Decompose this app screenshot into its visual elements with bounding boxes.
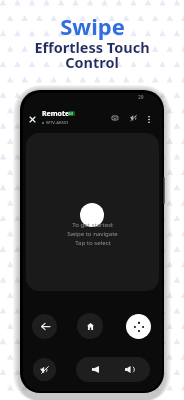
staticText: Swipe to navigate: [67, 229, 118, 237]
staticText: Remote: [42, 109, 70, 119]
staticText: Tap to select: [75, 238, 111, 246]
button[interactable]: Volume up: [117, 357, 141, 381]
button[interactable]: To get started:: [26, 133, 159, 291]
button[interactable]: Back: [32, 314, 57, 339]
button[interactable]: Volume down: [83, 357, 107, 381]
button[interactable]: Mute: [33, 358, 56, 381]
button[interactable]: Directional pad: [126, 314, 151, 339]
button[interactable]: Home: [77, 313, 103, 339]
staticText: AUV: [68, 111, 75, 116]
button[interactable]: Mute: [125, 110, 141, 126]
staticText: 29: [138, 94, 144, 101]
button[interactable]: Close: [24, 111, 41, 128]
staticText: To get started:: [72, 220, 114, 228]
button[interactable]: Keyboard: [107, 110, 123, 126]
staticText: WTV-AK50I: [46, 120, 68, 126]
button[interactable]: More options: [141, 111, 157, 127]
staticText: Effortless Touch Control: [34, 37, 150, 72]
staticText: Swipe: [60, 11, 125, 41]
